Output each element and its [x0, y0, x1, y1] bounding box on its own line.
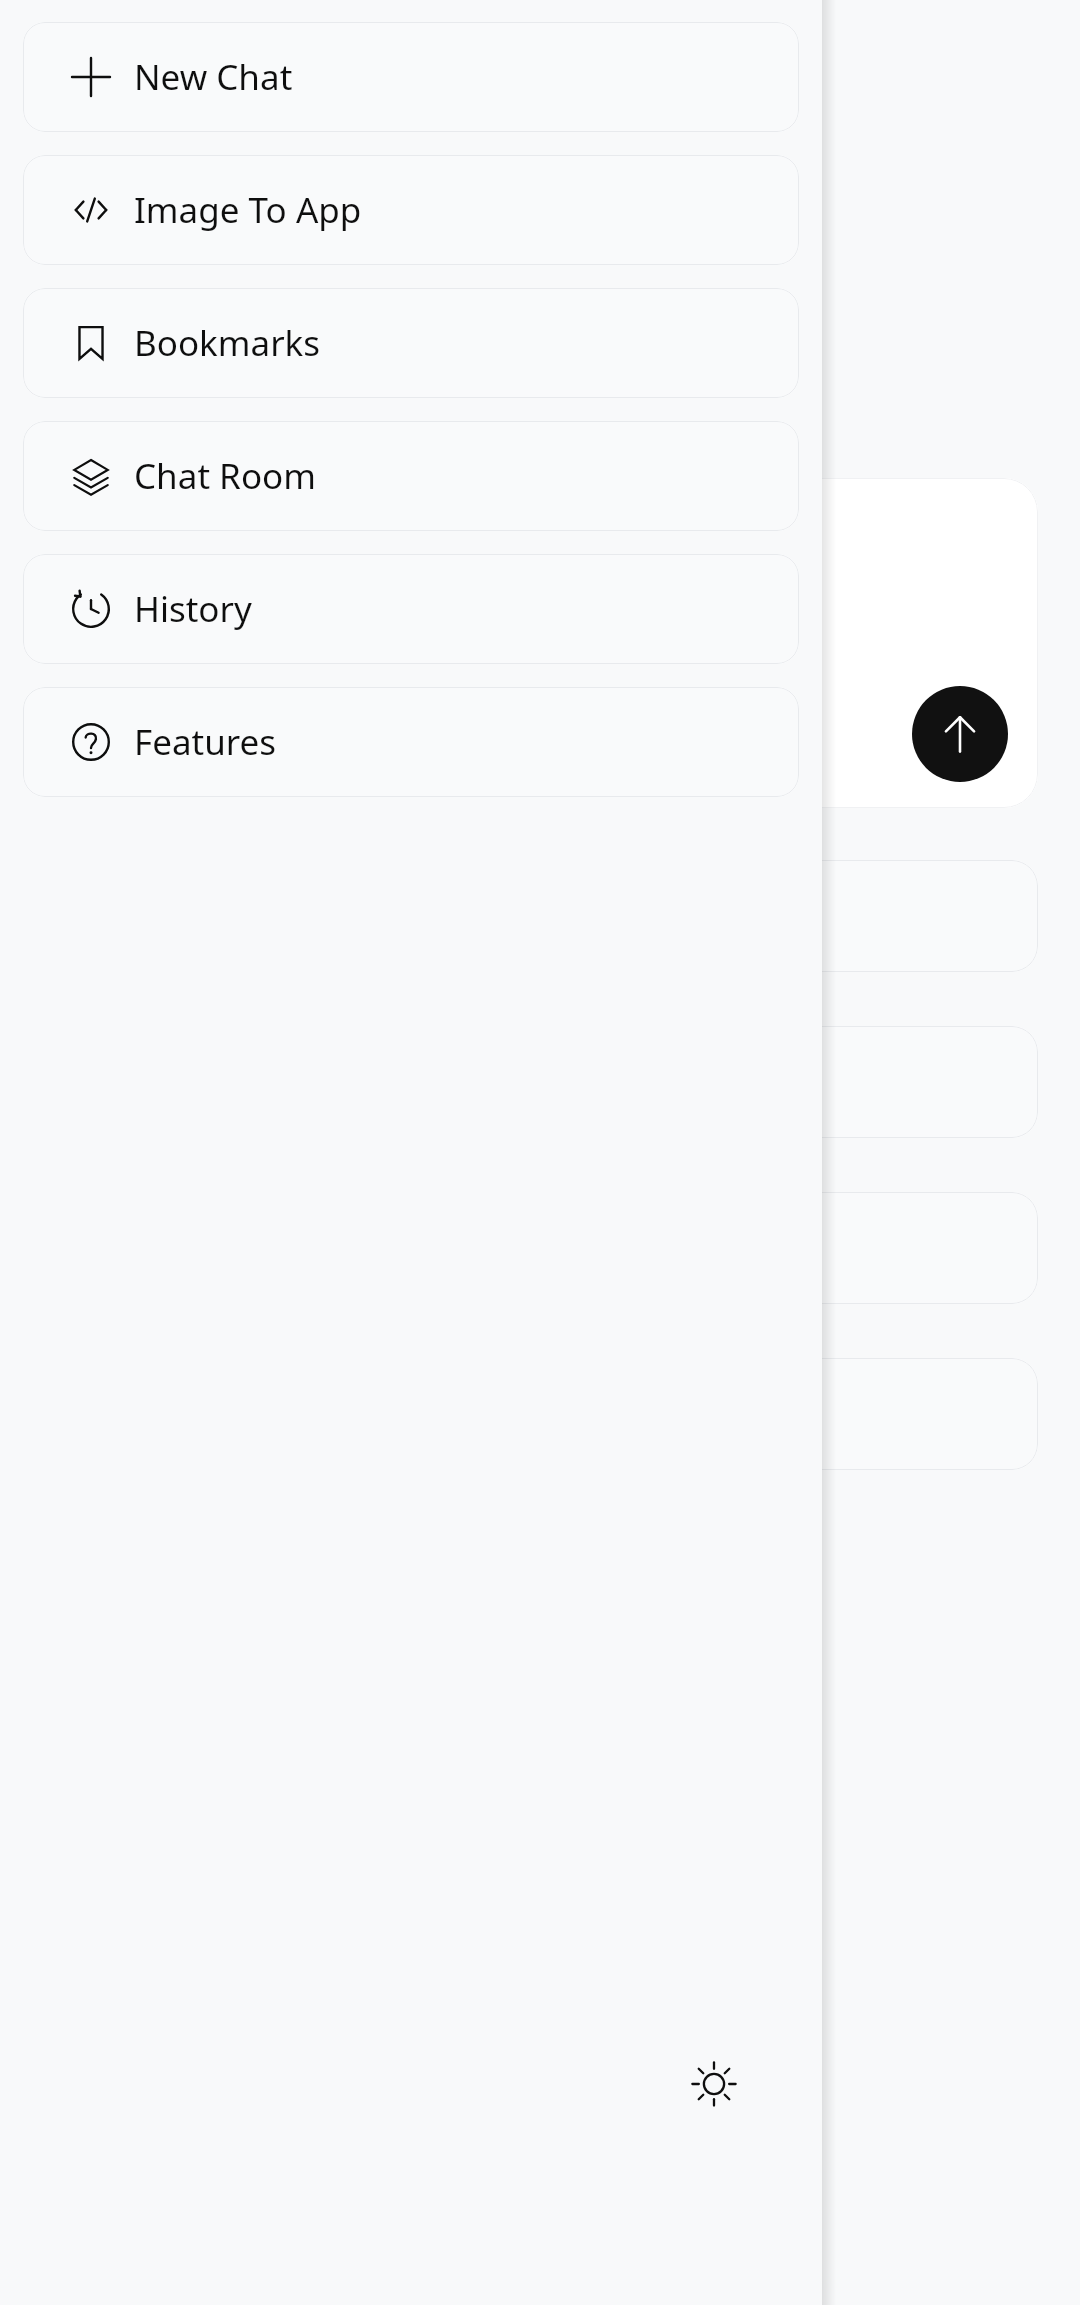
button[interactable]: Chat Room: [23, 421, 799, 531]
staticText: Image To App: [134, 186, 362, 234]
staticText: for companies: [600, 385, 803, 426]
staticText: Chat Room: [134, 452, 316, 500]
staticText: Bookmarks: [134, 319, 321, 367]
button[interactable]: History: [23, 554, 799, 664]
button[interactable]: Send: [912, 686, 1008, 782]
button[interactable]: Toggle theme: [676, 2046, 752, 2122]
button[interactable]: Attach photo: [78, 700, 142, 764]
button[interactable]: Image To App: [23, 155, 799, 265]
button[interactable]: Features: [23, 687, 799, 797]
staticText: New Chat: [134, 53, 293, 101]
staticText: History: [134, 585, 252, 633]
staticText: Features: [134, 718, 277, 766]
button[interactable]: New Chat: [23, 22, 799, 132]
button[interactable]: Bookmarks: [23, 288, 799, 398]
button[interactable]: [42, 478, 1038, 808]
